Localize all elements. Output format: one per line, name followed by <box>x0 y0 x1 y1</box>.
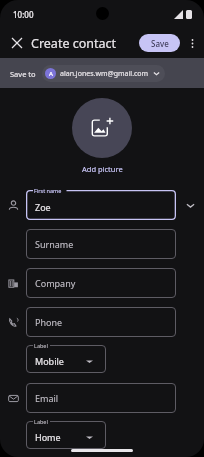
button[interactable]: Label <box>26 345 106 373</box>
button[interactable]: Save <box>139 34 180 52</box>
staticText: 10:00 <box>13 9 34 20</box>
staticText: A <box>49 70 53 78</box>
staticText: Save <box>151 38 169 49</box>
staticText: Email <box>35 392 59 404</box>
button[interactable]: Close <box>4 30 30 56</box>
staticText: Mobile <box>35 355 64 367</box>
staticText: Save to <box>10 69 36 79</box>
staticText: Create contact <box>31 35 117 52</box>
staticText: alan.jones.wm@gmail.com <box>60 69 149 79</box>
staticText: Label <box>34 418 48 425</box>
button[interactable]: Phone <box>26 307 176 337</box>
button[interactable]: Company <box>26 268 176 298</box>
staticText: Surname <box>35 238 74 250</box>
staticText: Phone <box>35 316 63 328</box>
staticText: Home <box>35 431 61 443</box>
button[interactable]: Label <box>26 421 106 449</box>
staticText: Add picture <box>82 164 123 174</box>
button[interactable]: More options <box>181 32 203 54</box>
button[interactable]: First name <box>26 190 176 220</box>
button[interactable]: Add picture <box>72 98 132 158</box>
button[interactable]: Surname <box>26 229 176 259</box>
staticText: Zoe <box>35 201 51 213</box>
staticText: Company <box>35 277 76 289</box>
button[interactable]: Email <box>26 383 176 413</box>
staticText: Label <box>34 342 48 349</box>
staticText: First name <box>34 187 62 194</box>
button[interactable]: A <box>42 65 165 82</box>
button[interactable]: Expand name fields <box>176 190 204 220</box>
